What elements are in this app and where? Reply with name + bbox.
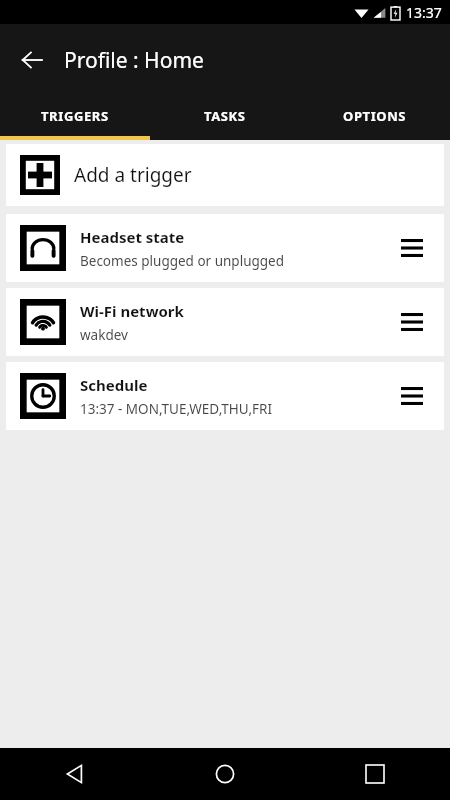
button[interactable]: Reorder <box>394 304 430 340</box>
staticText: Schedule <box>80 375 148 395</box>
button[interactable]: TASKS <box>150 96 300 136</box>
button[interactable]: Headset state <box>6 214 444 282</box>
staticText: Headset state <box>80 227 185 247</box>
button[interactable]: Reorder <box>394 230 430 266</box>
staticText: Profile : Home <box>64 46 204 75</box>
button[interactable]: Home <box>150 748 300 800</box>
staticText: wakdev <box>80 326 128 344</box>
button[interactable]: Add a trigger <box>6 144 444 206</box>
staticText: Becomes plugged or unplugged <box>80 252 284 270</box>
staticText: Add a trigger <box>74 162 192 188</box>
staticText: 13:37 <box>406 3 442 22</box>
staticText: OPTIONS <box>343 107 407 125</box>
button[interactable]: OPTIONS <box>300 96 450 136</box>
staticText: Wi-Fi network <box>80 301 184 321</box>
staticText: TRIGGERS <box>41 107 109 125</box>
staticText: 13:37 - MON,TUE,WED,THU,FRI <box>80 400 273 418</box>
button[interactable]: Reorder <box>394 378 430 414</box>
button[interactable]: Schedule <box>6 362 444 430</box>
button[interactable]: Back <box>0 748 150 800</box>
staticText: TASKS <box>204 107 246 125</box>
button[interactable]: TRIGGERS <box>0 96 150 136</box>
button[interactable]: Back <box>10 38 54 82</box>
button[interactable]: Recent apps <box>300 748 450 800</box>
button[interactable]: Wi-Fi network <box>6 288 444 356</box>
